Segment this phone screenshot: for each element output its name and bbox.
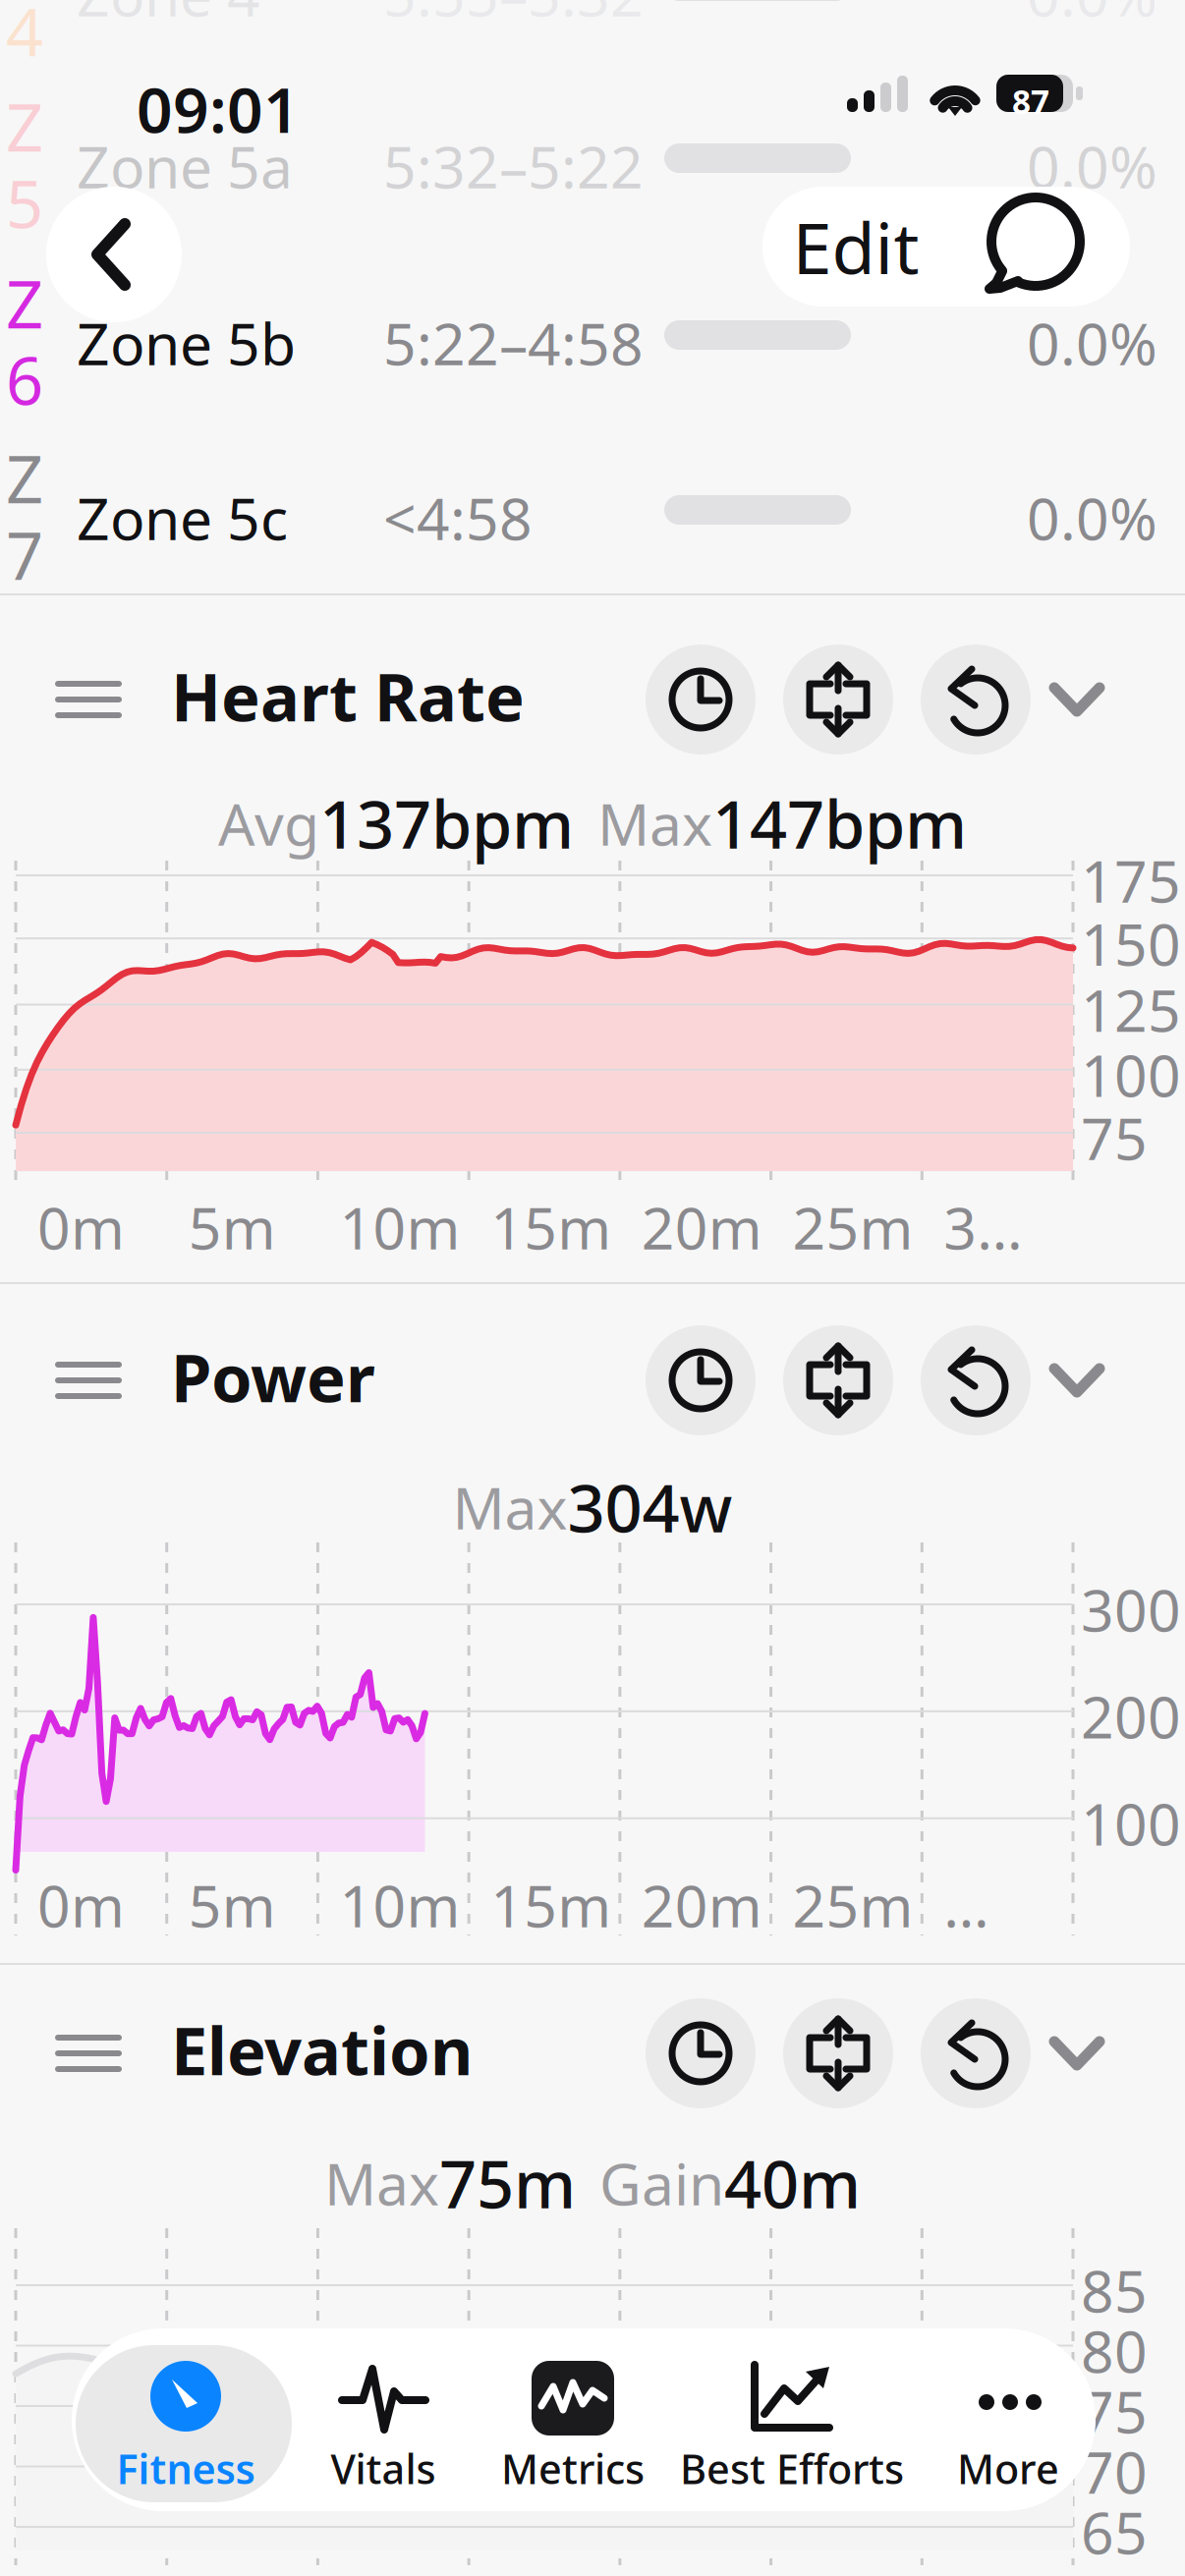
staticText: 125 [1081,971,1181,1048]
staticText: 150 [1081,905,1181,982]
staticText: Best Efforts [680,2441,904,2495]
staticText: <4:58 [383,479,533,556]
staticText: 304w [567,1464,733,1551]
button[interactable]: Edit [762,187,949,307]
staticText: … [944,1867,989,1943]
staticText: Z [6,259,43,346]
staticText: 15m [490,1189,611,1265]
staticText: Power [171,1333,375,1420]
staticText: Max [452,1469,567,1545]
staticText: 175 [1081,842,1181,918]
staticText: 4 [6,0,43,74]
staticText: 7 [6,511,43,598]
staticText: Z [6,83,43,169]
staticText: 70 [1081,2433,1148,2510]
button[interactable]: Time range [646,644,756,755]
staticText: 85 [1081,2252,1148,2328]
button[interactable]: Fitness [80,2335,292,2504]
staticText: Zone 5b [77,305,296,381]
staticText: 20m [642,1189,762,1265]
staticText: 09:01 [137,67,300,150]
staticText: Max [324,2145,439,2221]
button[interactable]: Reset [921,644,1031,755]
staticText: 75 [1081,2373,1148,2449]
staticText: 200 [1081,1678,1181,1754]
staticText: 0.0% [1027,0,1157,32]
button[interactable]: Metrics [475,2335,671,2504]
staticText: 5:22–4:58 [383,305,644,381]
staticText: 0.0% [1027,128,1157,204]
staticText: 100 [1081,1036,1181,1113]
staticText: 147bpm [712,780,967,867]
button[interactable]: Best Efforts [671,2335,913,2504]
staticText: 5:55–5:32 [383,0,644,32]
staticText: 0.0% [1027,479,1157,556]
button[interactable]: Scale [783,1325,893,1435]
staticText: 137bpm [319,780,574,867]
staticText: 75 [1081,1099,1148,1176]
button[interactable]: More [913,2335,1103,2504]
staticText: Zone 5c [77,479,288,556]
staticText: 87 [1012,80,1049,123]
button[interactable]: Reorder Heart Rate [33,645,141,754]
staticText: Gain [599,2145,724,2221]
staticText: Max [597,785,712,862]
button[interactable]: Comments [977,187,1093,307]
button[interactable]: Reset [921,1325,1031,1435]
button[interactable]: Collapse Elevation [1035,1998,1119,2108]
staticText: 10m [339,1189,460,1265]
staticText: 5 [6,159,43,246]
staticText: 40m [724,2139,861,2226]
staticText: 3… [944,1189,1022,1265]
staticText: Avg [218,785,319,862]
button[interactable]: Reorder Elevation [33,1999,141,2107]
staticText: 6 [6,336,43,423]
staticText: Zone 5a [77,128,293,204]
staticText: Heart Rate [171,652,525,739]
staticText: More [957,2441,1059,2495]
staticText: Z [6,434,43,521]
staticText: 5:32–5:22 [383,128,644,204]
staticText: 65 [1081,2493,1148,2570]
staticText: 25m [793,1867,913,1943]
button[interactable]: Collapse Power [1035,1325,1119,1435]
staticText: Zone 4 [77,0,260,32]
button[interactable]: Collapse Heart Rate [1035,644,1119,755]
staticText: 75m [439,2139,576,2226]
button[interactable]: Time range [646,1998,756,2108]
staticText: 15m [490,1867,611,1943]
staticText: 100 [1081,1785,1181,1861]
button[interactable]: Time range [646,1325,756,1435]
staticText: 25m [793,1189,913,1265]
staticText: Metrics [501,2441,645,2495]
button[interactable]: Reset [921,1998,1031,2108]
staticText: Elevation [171,2006,473,2093]
staticText: 20m [642,1867,762,1943]
button[interactable]: Reorder Power [33,1326,141,1434]
staticText: 80 [1081,2312,1148,2389]
staticText: 5m [188,1867,276,1943]
staticText: Edit [792,200,919,294]
staticText: 0m [37,1867,125,1943]
staticText: 0m [37,1189,125,1265]
button[interactable]: Vitals [292,2335,475,2504]
staticText: 5m [188,1189,276,1265]
button[interactable]: Scale [783,644,893,755]
staticText: Fitness [116,2441,255,2495]
button[interactable]: Back [46,187,182,322]
staticText: 10m [339,1867,460,1943]
button[interactable]: Scale [783,1998,893,2108]
staticText: Vitals [331,2441,436,2495]
staticText: 0.0% [1027,305,1157,381]
staticText: 300 [1081,1571,1181,1647]
